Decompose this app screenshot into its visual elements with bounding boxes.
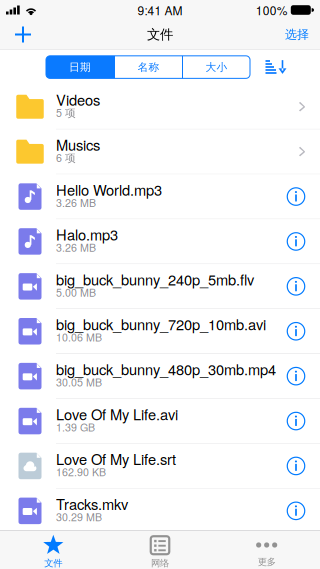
staticText: 名称	[137, 60, 159, 74]
button[interactable]: 日期	[46, 56, 114, 78]
button[interactable]: 名称	[115, 56, 182, 78]
staticText: 文件	[147, 26, 173, 43]
staticText: 9:41 AM	[137, 1, 182, 19]
button[interactable]: Love Of My Life.srt	[0, 444, 320, 489]
staticText: Musics	[56, 134, 100, 155]
staticText: big_buck_bunny_240p_5mb.flv	[56, 269, 254, 290]
staticText: Love Of My Life.srt	[56, 448, 176, 469]
staticText: Hello World.mp3	[56, 179, 162, 200]
staticText: 100%	[256, 1, 288, 19]
staticText: Tracks.mkv	[56, 493, 128, 514]
staticText: 5.00 MB	[56, 284, 96, 300]
staticText: 162.90 KB	[56, 464, 106, 479]
button[interactable]: Hello World.mp3	[0, 174, 320, 219]
staticText: big_buck_bunny_720p_10mb.avi	[56, 313, 266, 334]
button[interactable]: 网络	[107, 530, 213, 566]
staticText: 6 项	[56, 150, 76, 165]
button[interactable]: Sort order	[260, 52, 292, 82]
button[interactable]: 更多	[213, 530, 320, 566]
staticText: Videos	[56, 89, 100, 110]
button[interactable]: 大小	[183, 56, 250, 78]
button[interactable]: Videos	[0, 85, 320, 129]
staticText: 大小	[205, 60, 227, 74]
staticText: big_buck_bunny_480p_30mb.mp4	[56, 358, 276, 379]
staticText: 日期	[69, 60, 91, 74]
staticText: 选择	[285, 27, 309, 42]
staticText: Love Of My Life.avi	[56, 403, 178, 424]
staticText: 网络	[151, 557, 169, 569]
button[interactable]: Love Of My Life.avi	[0, 399, 320, 444]
staticText: 3.26 MB	[56, 240, 96, 255]
staticText: 1.39 GB	[56, 419, 95, 434]
button[interactable]: Tracks.mkv	[0, 489, 320, 534]
staticText: Halo.mp3	[56, 224, 118, 245]
staticText: 10.06 MB	[56, 329, 102, 345]
button[interactable]: Add	[0, 20, 46, 49]
staticText: 文件	[44, 557, 62, 569]
staticText: 3.26 MB	[56, 195, 96, 210]
button[interactable]: Halo.mp3	[0, 219, 320, 264]
button[interactable]: Musics	[0, 129, 320, 174]
button[interactable]: 文件	[0, 530, 107, 566]
button[interactable]: big_buck_bunny_240p_5mb.flv	[0, 264, 320, 309]
staticText: 5 项	[56, 105, 76, 120]
button[interactable]: 选择	[274, 20, 320, 49]
button[interactable]: big_buck_bunny_480p_30mb.mp4	[0, 354, 320, 399]
staticText: 更多	[258, 556, 276, 568]
staticText: 30.29 MB	[56, 509, 102, 524]
staticText: 30.05 MB	[56, 374, 102, 390]
button[interactable]: big_buck_bunny_720p_10mb.avi	[0, 309, 320, 354]
